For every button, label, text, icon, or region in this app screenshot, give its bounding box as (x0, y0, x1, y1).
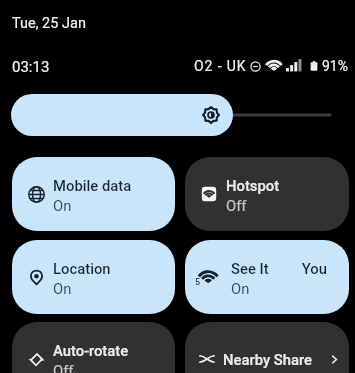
staticText: Nearby Share (223, 351, 326, 368)
staticText: 91% (322, 58, 348, 74)
button[interactable]: Hotspot (185, 157, 349, 231)
button[interactable]: Nearby Share (185, 322, 349, 373)
staticText: On (53, 197, 72, 214)
staticText: On (231, 280, 250, 297)
staticText: 03:13 (12, 58, 50, 76)
staticText: Hotspot (226, 177, 280, 194)
button[interactable]: Brightness (11, 94, 233, 136)
staticText: See It You (231, 260, 327, 277)
staticText: On (53, 280, 72, 297)
staticText: Auto-rotate (53, 342, 129, 359)
staticText: 5 (195, 277, 201, 288)
button[interactable]: Mobile data (12, 157, 175, 231)
button[interactable]: Auto-rotate (12, 322, 175, 373)
staticText: Off (226, 197, 247, 214)
staticText: O2 - UK (194, 58, 247, 74)
button[interactable]: Location (12, 240, 175, 314)
staticText: Off (53, 362, 74, 373)
staticText: Tue, 25 Jan (12, 15, 86, 32)
button[interactable]: 5 (185, 240, 349, 314)
staticText: Location (53, 260, 111, 277)
staticText: Mobile data (53, 177, 132, 194)
